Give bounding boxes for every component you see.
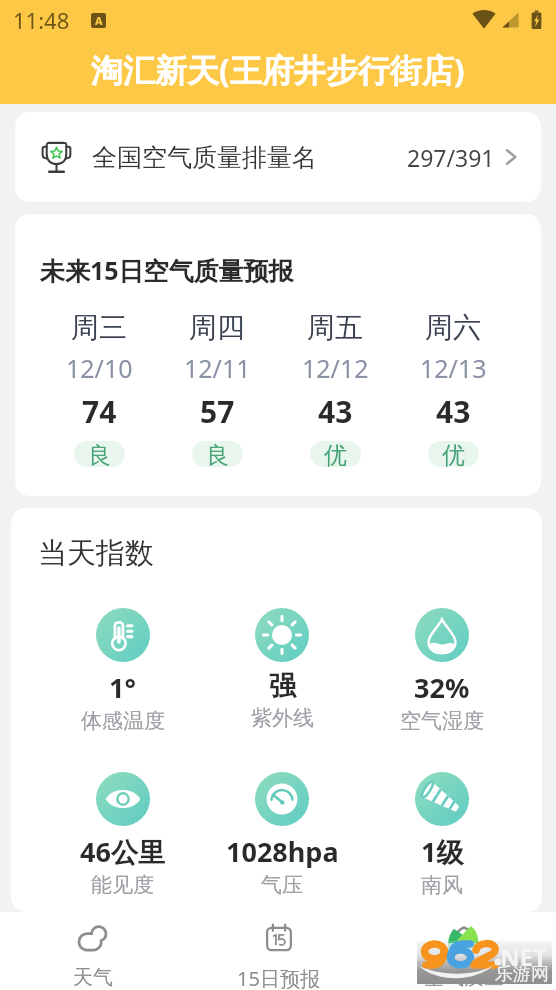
staticText: 周六 — [425, 310, 481, 345]
staticText: 当天指数 — [38, 535, 154, 572]
button[interactable]: Wind — [362, 772, 522, 898]
button[interactable]: Pressure — [202, 772, 362, 898]
staticText: 297/391 — [407, 142, 495, 173]
staticText: 12/13 — [420, 351, 487, 385]
staticText: 1° — [109, 669, 136, 706]
staticText: 全国空气质量排量名 — [92, 142, 317, 173]
staticText: 优 — [324, 441, 347, 467]
staticText: 43 — [436, 391, 471, 432]
button[interactable]: Apparent temperature — [43, 608, 202, 734]
staticText: 空气质量 — [424, 965, 504, 990]
staticText: 南风 — [421, 872, 463, 898]
staticText: 12/10 — [66, 351, 133, 385]
staticText: 周五 — [307, 310, 363, 345]
staticText: 优 — [442, 441, 465, 467]
staticText: 周四 — [189, 310, 245, 345]
staticText: 57 — [200, 391, 235, 432]
staticText: 15日预报 — [237, 965, 320, 990]
staticText: 体感温度 — [81, 708, 165, 734]
staticText: 淘汇新天(王府井步行街店) — [91, 48, 465, 92]
button[interactable]: Visibility — [43, 772, 202, 898]
staticText: 良 — [88, 441, 111, 467]
staticText: 46公里 — [80, 833, 165, 870]
staticText: 未来15日空气质量预报 — [40, 253, 294, 287]
staticText: 乐游网 — [495, 963, 549, 986]
staticText: 能见度 — [91, 872, 154, 898]
staticText: 良 — [206, 441, 229, 467]
staticText: 气压 — [261, 872, 303, 898]
button[interactable]: UV index — [202, 608, 362, 731]
button[interactable]: 天气 — [0, 912, 186, 990]
staticText: 11:48 — [13, 5, 70, 35]
staticText: 43 — [318, 391, 353, 432]
staticText: 1级 — [421, 833, 464, 870]
button[interactable]: 全国空气质量排量名 — [15, 112, 541, 202]
staticText: 周三 — [71, 310, 127, 345]
button[interactable]: Humidity — [362, 608, 522, 734]
staticText: 1028hpa — [226, 833, 339, 870]
button[interactable]: 空气质量 — [371, 912, 556, 990]
staticText: 空气湿度 — [400, 708, 484, 734]
staticText: 12/11 — [184, 351, 251, 385]
staticText: 74 — [82, 391, 117, 432]
staticText: 强 — [269, 669, 296, 703]
staticText: 天气 — [73, 965, 113, 990]
staticText: 12/12 — [302, 351, 369, 385]
staticText: A — [95, 13, 103, 28]
staticText: 紫外线 — [251, 705, 314, 731]
button[interactable]: 15日预报 — [186, 912, 371, 990]
staticText: 32% — [414, 669, 470, 706]
staticText: NET — [500, 940, 547, 973]
